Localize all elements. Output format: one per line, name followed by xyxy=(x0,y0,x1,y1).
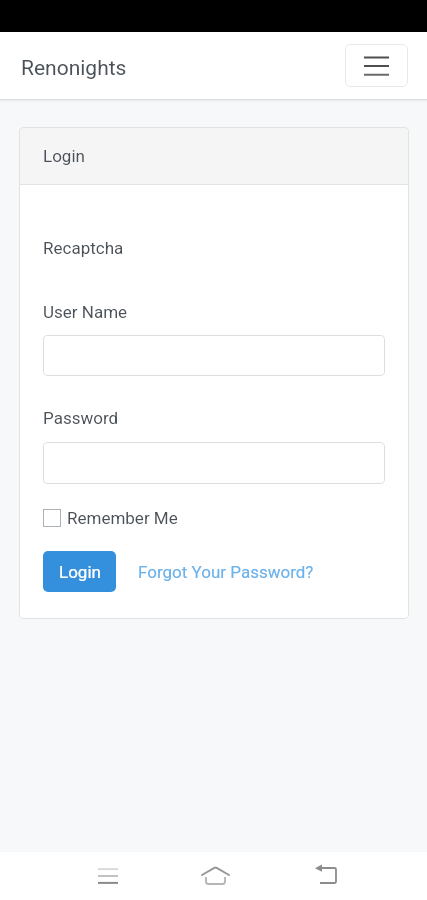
button[interactable]: Home xyxy=(194,863,236,889)
button[interactable]: Back xyxy=(305,859,345,887)
staticText: Recaptcha xyxy=(43,238,124,258)
staticText: Forgot Your Password? xyxy=(138,562,314,582)
button[interactable]: Forgot Your Password? xyxy=(138,562,314,582)
staticText: Login xyxy=(43,146,85,166)
button[interactable]: Password field xyxy=(43,442,385,484)
staticText: Login xyxy=(59,562,101,582)
button[interactable]: Login xyxy=(43,551,116,592)
button[interactable]: Menu xyxy=(345,44,408,87)
staticText: User Name xyxy=(43,302,128,322)
button[interactable]: Remember Me xyxy=(43,508,178,528)
staticText: Renonights xyxy=(21,56,127,81)
staticText: Password xyxy=(43,408,119,428)
staticText: Remember Me xyxy=(67,508,178,528)
button[interactable]: User Name field xyxy=(43,335,385,376)
button[interactable]: Recents xyxy=(88,863,128,889)
